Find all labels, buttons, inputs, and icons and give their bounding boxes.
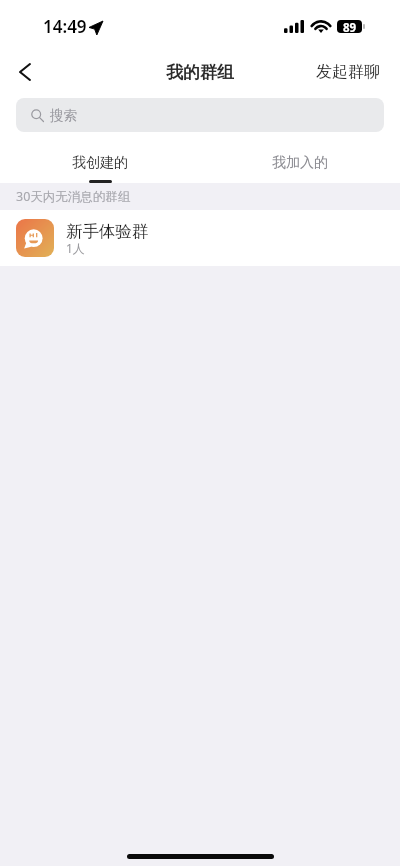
button[interactable]: 新手体验群 bbox=[0, 210, 400, 266]
staticText: 新手体验群 bbox=[66, 221, 149, 242]
staticText: 我加入的 bbox=[272, 154, 328, 172]
staticText: 1人 bbox=[66, 240, 85, 256]
button[interactable]: Back bbox=[0, 50, 48, 94]
button[interactable]: 发起群聊 bbox=[302, 50, 400, 94]
staticText: 我创建的 bbox=[72, 154, 128, 172]
staticText: 14:49 bbox=[43, 15, 87, 38]
staticText: 89 bbox=[343, 20, 357, 33]
button[interactable]: 我加入的 bbox=[200, 139, 400, 183]
staticText: 搜索 bbox=[50, 107, 77, 124]
button[interactable]: 搜索 bbox=[16, 98, 384, 132]
button[interactable]: 我创建的 bbox=[0, 139, 200, 183]
staticText: 发起群聊 bbox=[316, 62, 380, 82]
staticText: 我的群组 bbox=[166, 62, 234, 83]
staticText: 30天内无消息的群组 bbox=[16, 188, 131, 205]
